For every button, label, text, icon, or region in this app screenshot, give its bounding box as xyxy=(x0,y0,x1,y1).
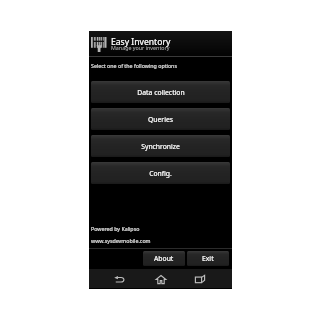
staticText: About xyxy=(154,254,174,263)
button[interactable]: Exit xyxy=(187,251,229,266)
staticText: Exit xyxy=(202,254,214,263)
button[interactable]: Back xyxy=(110,270,128,288)
staticText: Synchronize xyxy=(141,142,180,151)
button[interactable]: Queries xyxy=(91,108,230,130)
button[interactable]: Recent apps xyxy=(191,270,209,288)
button[interactable]: About xyxy=(143,251,185,266)
button[interactable]: Synchronize xyxy=(91,135,230,157)
button[interactable]: Config. xyxy=(91,162,230,184)
button[interactable]: Data collection xyxy=(91,81,230,103)
staticText: Data collection xyxy=(137,88,185,97)
staticText: Queries xyxy=(148,115,173,124)
staticText: Select one of the following options xyxy=(91,62,177,69)
button[interactable]: Home xyxy=(152,270,170,288)
staticText: Config. xyxy=(149,169,172,178)
staticText: Powered by Kalipso xyxy=(91,225,140,232)
staticText: www.sysdevmobile.com xyxy=(91,237,151,244)
staticText: Manage your inventory xyxy=(111,44,170,51)
staticText: Easy Inventory xyxy=(111,36,171,48)
